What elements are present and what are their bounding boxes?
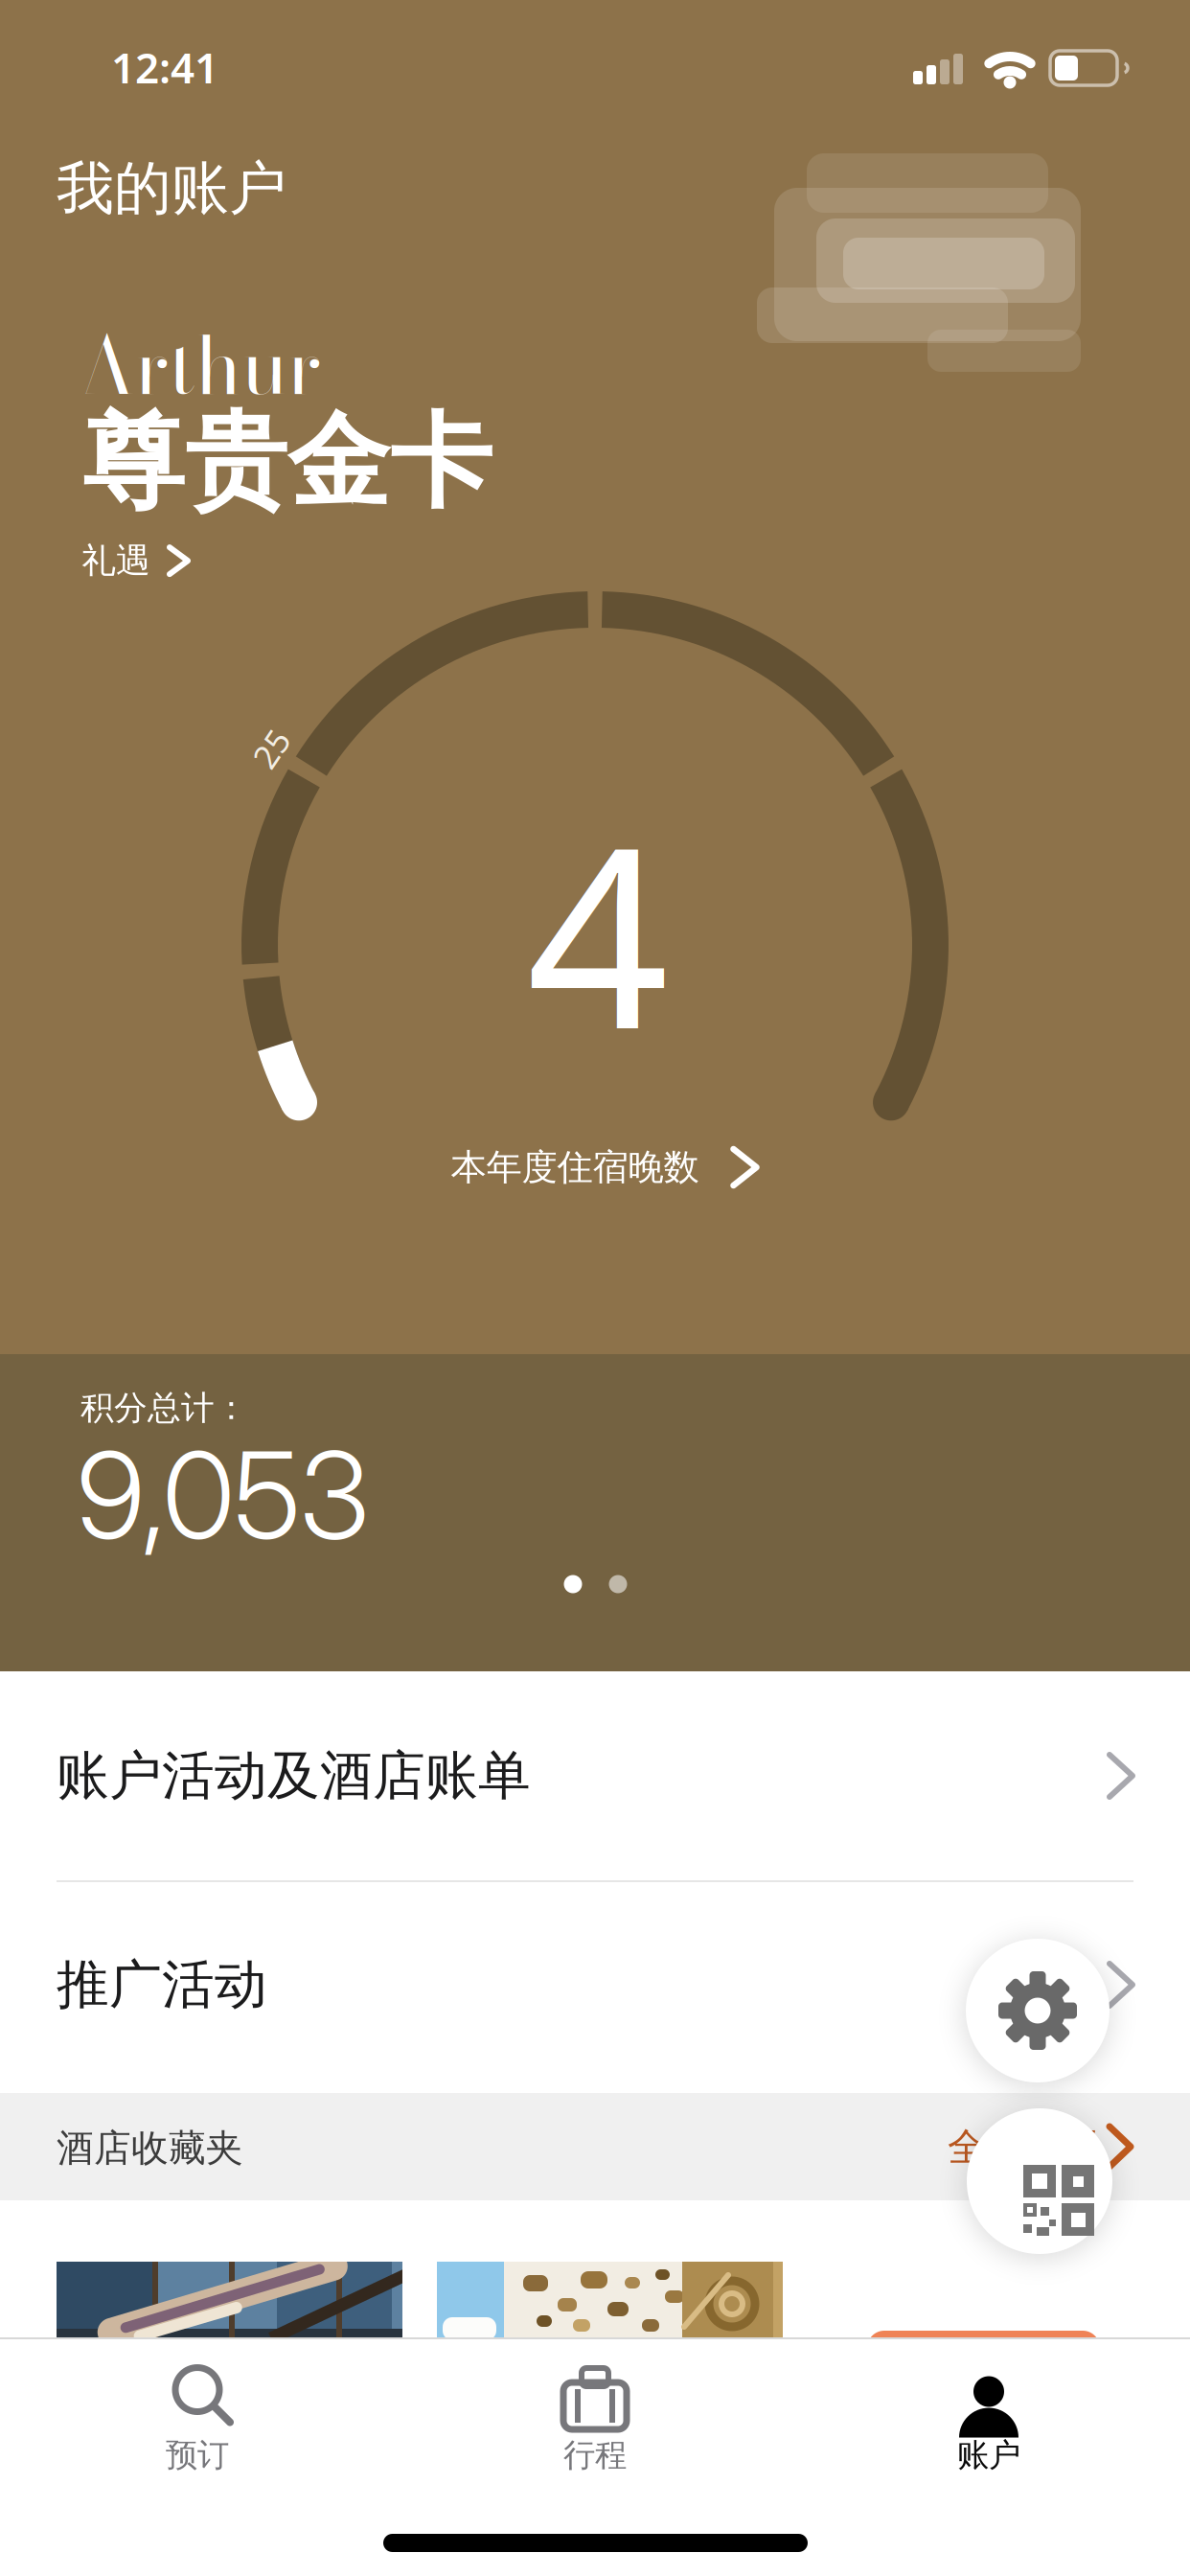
staticText: 12:41 (111, 39, 218, 95)
staticText: 4 (526, 766, 669, 1097)
button[interactable]: 设置 (966, 1939, 1110, 2082)
staticText: 尊贵金卡 (82, 400, 492, 525)
staticText: 积分总计： (80, 1388, 248, 1428)
staticText: 账户活动及酒店账单 (57, 1744, 531, 1808)
staticText: 预订 (166, 2436, 229, 2475)
button[interactable]: 行程 (451, 2338, 739, 2497)
staticText: 酒店收藏夹 (57, 2126, 243, 2171)
button[interactable]: 酒店收藏夹 (0, 2093, 1190, 2200)
button[interactable]: 礼遇 (81, 540, 188, 582)
staticText: Arthur (77, 305, 321, 426)
staticText: 25 (252, 726, 290, 770)
button[interactable]: 收藏酒店 1 (57, 2262, 402, 2338)
button[interactable]: 账户活动及酒店账单 (0, 1671, 1190, 1880)
staticText: 礼遇 (81, 540, 150, 582)
staticText: 本年度住宿晚数 (451, 1145, 699, 1189)
button[interactable]: 推广活动 (0, 1880, 1190, 2089)
button[interactable]: 会员二维码 (967, 2108, 1112, 2254)
staticText: 我的账户 (57, 153, 286, 224)
button[interactable]: 账户 (845, 2338, 1133, 2497)
button[interactable]: 更多收藏 (867, 2331, 1100, 2388)
button[interactable]: 本年度住宿晚数 (451, 1145, 756, 1189)
staticText: 全部显示 (948, 2124, 1101, 2171)
staticText: 9,053 (77, 1422, 369, 1567)
button[interactable]: 收藏酒店 2 (437, 2262, 783, 2338)
staticText: 账户 (957, 2436, 1020, 2475)
button[interactable]: 预订 (54, 2338, 341, 2497)
staticText: 行程 (563, 2436, 627, 2475)
staticText: 推广活动 (57, 1953, 267, 2017)
